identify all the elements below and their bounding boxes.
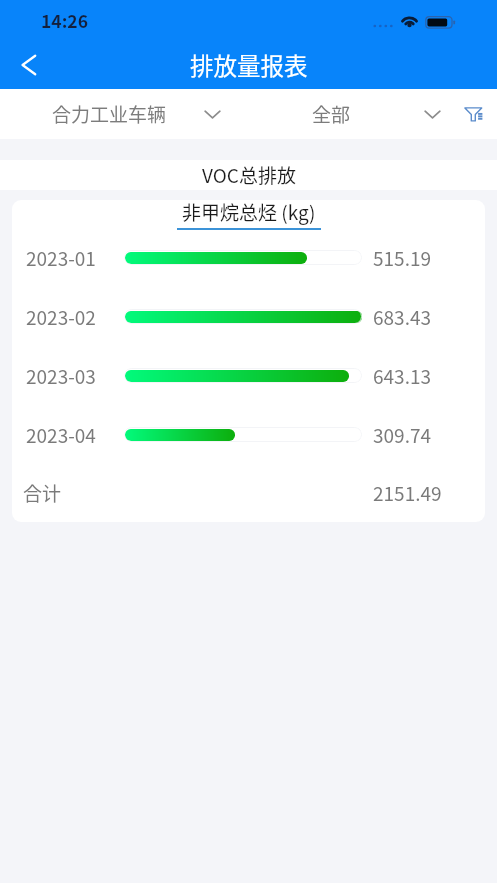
button[interactable]: Back	[4, 41, 52, 89]
staticText: 309.74	[373, 421, 432, 449]
staticText: 683.43	[373, 303, 432, 331]
button[interactable]: 全部	[250, 89, 453, 139]
staticText: 2023-04	[26, 421, 96, 449]
staticText: 515.19	[373, 244, 432, 272]
staticText: 2023-03	[26, 362, 96, 390]
staticText: 14:26	[41, 8, 88, 33]
staticText: 排放量报表	[190, 48, 308, 82]
staticText: 2151.49	[373, 479, 442, 507]
button[interactable]: 合力工业车辆	[0, 89, 250, 139]
button[interactable]: 非甲烷总烃 (kg)	[177, 200, 321, 230]
staticText: 非甲烷总烃 (kg)	[182, 200, 316, 226]
staticText: VOC总排放	[202, 161, 296, 189]
staticText: 2023-02	[26, 303, 96, 331]
staticText: 合计	[23, 479, 62, 507]
staticText: 643.13	[373, 362, 432, 390]
staticText: 全部	[312, 100, 351, 128]
staticText: 2023-01	[26, 244, 96, 272]
staticText: 合力工业车辆	[52, 100, 167, 128]
button[interactable]: Filter	[451, 89, 497, 139]
